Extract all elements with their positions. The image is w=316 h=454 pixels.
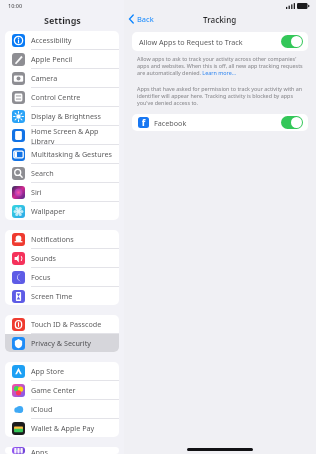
staticText: Notifications xyxy=(31,234,74,244)
staticText: Multitasking & Gestures xyxy=(31,149,112,159)
button[interactable]: Multitasking & Gestures xyxy=(5,145,119,163)
staticText: Allow Apps to Request to Track xyxy=(139,37,243,47)
staticText: Game Center xyxy=(31,385,76,395)
staticText: iCloud xyxy=(31,404,53,414)
button[interactable]: Allow Apps to Request to Track xyxy=(132,32,308,51)
staticText: Apps xyxy=(31,447,48,454)
staticText: Accessibility xyxy=(31,35,72,45)
button[interactable]: Sounds xyxy=(5,249,119,267)
button[interactable]: iCloud xyxy=(5,400,119,418)
button[interactable]: Camera xyxy=(5,69,119,87)
staticText: Sounds xyxy=(31,253,57,263)
button[interactable]: Search xyxy=(5,164,119,182)
button[interactable]: Toggle on xyxy=(281,116,303,129)
staticText: Back xyxy=(137,14,154,24)
button[interactable]: Control Centre xyxy=(5,88,119,106)
button[interactable]: Apps xyxy=(5,447,119,454)
button[interactable]: Siri xyxy=(5,183,119,201)
staticText: Privacy & Security xyxy=(31,338,91,348)
staticText: Camera xyxy=(31,73,58,83)
button[interactable]: f xyxy=(132,114,308,131)
staticText: Siri xyxy=(31,187,42,197)
button[interactable]: Touch ID & Passcode xyxy=(5,315,119,333)
button[interactable]: Toggle on xyxy=(281,35,303,48)
staticText: Tracking xyxy=(203,14,237,25)
staticText: Settings xyxy=(44,14,81,26)
button[interactable]: Privacy & Security xyxy=(5,334,119,352)
button[interactable]: Display & Brightness xyxy=(5,107,119,125)
button[interactable]: Wallpaper xyxy=(5,202,119,220)
staticText: App Store xyxy=(31,366,65,376)
staticText: Wallpaper xyxy=(31,206,66,216)
button[interactable]: Home Screen & App Library xyxy=(5,126,119,144)
staticText: Apps that have asked for permission to t… xyxy=(137,85,303,106)
button[interactable]: Wallet & Apple Pay xyxy=(5,419,119,437)
button[interactable]: Focus xyxy=(5,268,119,286)
button[interactable]: Back xyxy=(129,14,154,24)
button[interactable]: Accessibility xyxy=(5,31,119,49)
staticText: Focus xyxy=(31,272,51,282)
staticText: Display & Brightness xyxy=(31,111,101,121)
staticText: Home Screen & App Library xyxy=(31,126,119,144)
staticText: Allow apps to ask to track your activity… xyxy=(137,55,303,76)
button[interactable]: App Store xyxy=(5,362,119,380)
staticText: Control Centre xyxy=(31,92,81,102)
staticText: Search xyxy=(31,168,54,178)
staticText: 10:00 xyxy=(8,2,23,9)
staticText: f xyxy=(142,117,146,128)
button[interactable]: Game Center xyxy=(5,381,119,399)
staticText: Facebook xyxy=(154,118,187,128)
button[interactable]: Screen Time xyxy=(5,287,119,305)
button[interactable]: Notifications xyxy=(5,230,119,248)
staticText: Touch ID & Passcode xyxy=(31,319,102,329)
staticText: Apple Pencil xyxy=(31,54,73,64)
staticText: Screen Time xyxy=(31,291,73,301)
staticText: Wallet & Apple Pay xyxy=(31,423,95,433)
button[interactable]: Apple Pencil xyxy=(5,50,119,68)
